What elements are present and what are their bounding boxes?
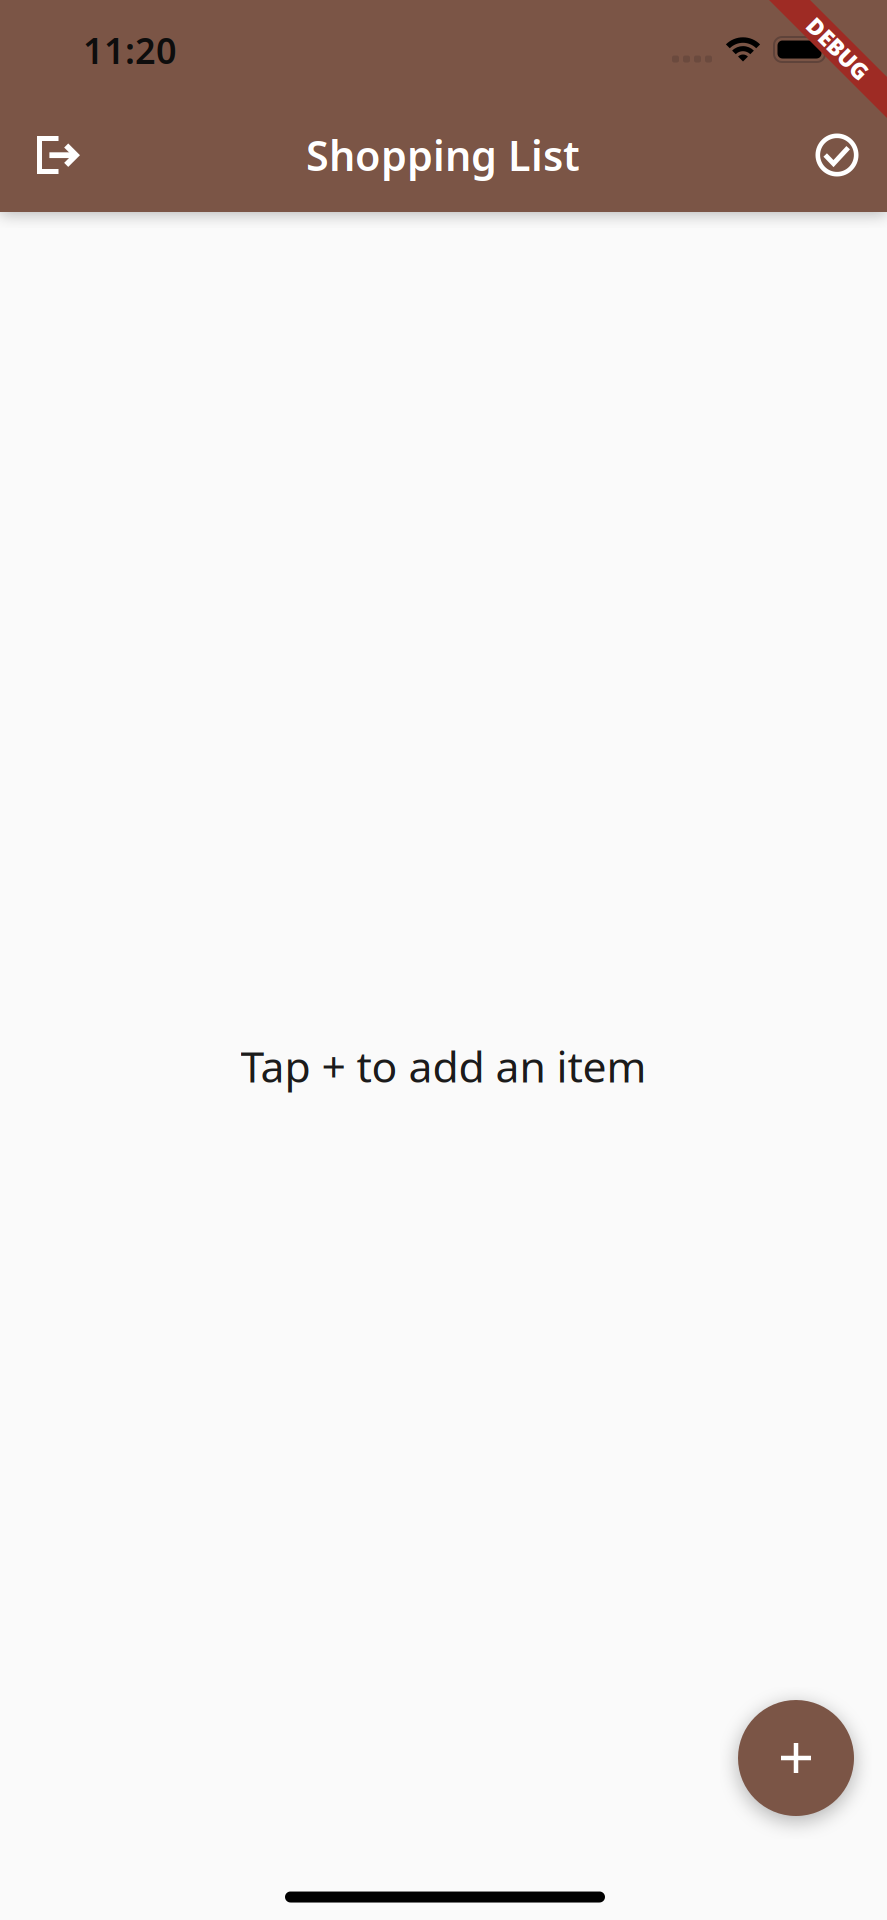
staticText: DEBUG	[799, 33, 877, 63]
button[interactable]: Add item	[738, 1700, 854, 1816]
staticText: Tap + to add an item	[240, 1038, 646, 1094]
staticText: 11:20	[83, 26, 177, 74]
staticText: Shopping List	[306, 128, 580, 182]
button[interactable]: Sign out	[10, 107, 106, 203]
button[interactable]: Clear purchased items	[789, 107, 885, 203]
